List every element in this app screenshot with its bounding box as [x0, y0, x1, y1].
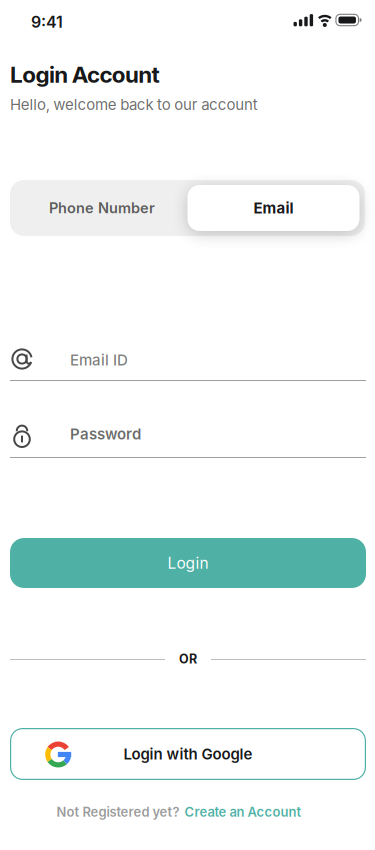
staticText: Phone Number: [49, 199, 155, 217]
staticText: Email: [253, 199, 293, 217]
staticText: Hello, welcome back to our account: [10, 95, 258, 114]
staticText: 9:41: [31, 12, 63, 32]
staticText: Password: [70, 425, 141, 443]
button[interactable]: Login: [10, 538, 366, 588]
button[interactable]: Email: [187, 185, 359, 231]
button[interactable]: Login with Google: [10, 728, 366, 780]
button[interactable]: Phone Number: [13, 180, 190, 236]
staticText: Create an Account: [184, 804, 301, 820]
staticText: Login Account: [10, 61, 160, 88]
button[interactable]: Create an Account: [184, 804, 301, 820]
staticText: Not Registered yet?: [56, 804, 179, 820]
staticText: Login: [167, 554, 208, 572]
staticText: Email ID: [70, 351, 128, 369]
staticText: Login with Google: [123, 745, 252, 763]
staticText: OR: [179, 651, 197, 666]
